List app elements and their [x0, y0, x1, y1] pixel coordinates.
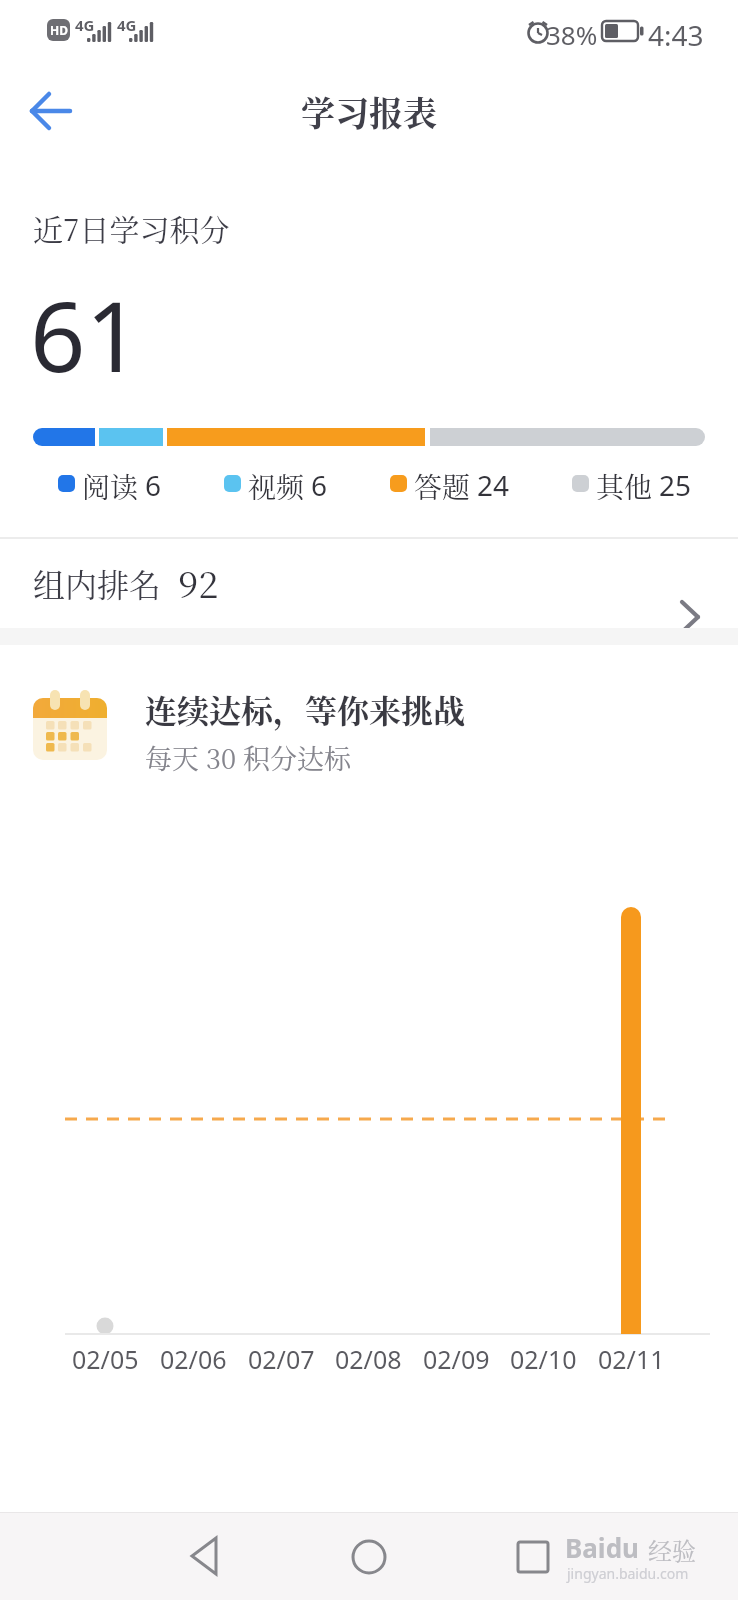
staticText: 38%: [546, 17, 598, 52]
staticText: 近7日学习积分: [33, 206, 230, 249]
button[interactable]: [342, 1513, 396, 1599]
staticText: 其他: [596, 466, 653, 500]
button[interactable]: [20, 81, 80, 141]
staticText: 61: [30, 268, 141, 400]
button[interactable]: [0, 660, 738, 785]
staticText: 02/09: [423, 1342, 490, 1376]
button[interactable]: [178, 1513, 232, 1599]
staticText: 阅读: [82, 466, 139, 500]
staticText: 视频: [248, 466, 305, 500]
staticText: 02/10: [510, 1342, 577, 1376]
staticText: 25: [659, 466, 692, 500]
staticText: 92: [178, 557, 219, 609]
staticText: 4:43: [648, 16, 704, 54]
staticText: 02/06: [160, 1342, 227, 1376]
staticText: 02/05: [72, 1342, 139, 1376]
staticText: 连续达标，等你来挑战: [145, 686, 466, 732]
staticText: Baidu: [565, 1530, 639, 1565]
staticText: 4G: [117, 15, 137, 35]
staticText: HD: [50, 22, 68, 38]
staticText: jingyan.baidu.com: [567, 1564, 689, 1583]
staticText: 组内排名: [33, 560, 162, 606]
staticText: 学习报表: [301, 87, 437, 136]
staticText: 6: [145, 466, 162, 500]
staticText: 4G: [75, 15, 95, 35]
staticText: 6: [311, 466, 328, 500]
staticText: 24: [477, 466, 510, 500]
staticText: 经验: [648, 1532, 696, 1566]
staticText: 02/11: [598, 1342, 665, 1376]
button[interactable]: 组内排名: [0, 538, 738, 628]
staticText: 每天 30 积分达标: [145, 738, 351, 777]
staticText: 02/08: [335, 1342, 402, 1376]
staticText: 答题: [414, 466, 471, 500]
staticText: 02/07: [248, 1342, 315, 1376]
button[interactable]: [506, 1513, 560, 1599]
